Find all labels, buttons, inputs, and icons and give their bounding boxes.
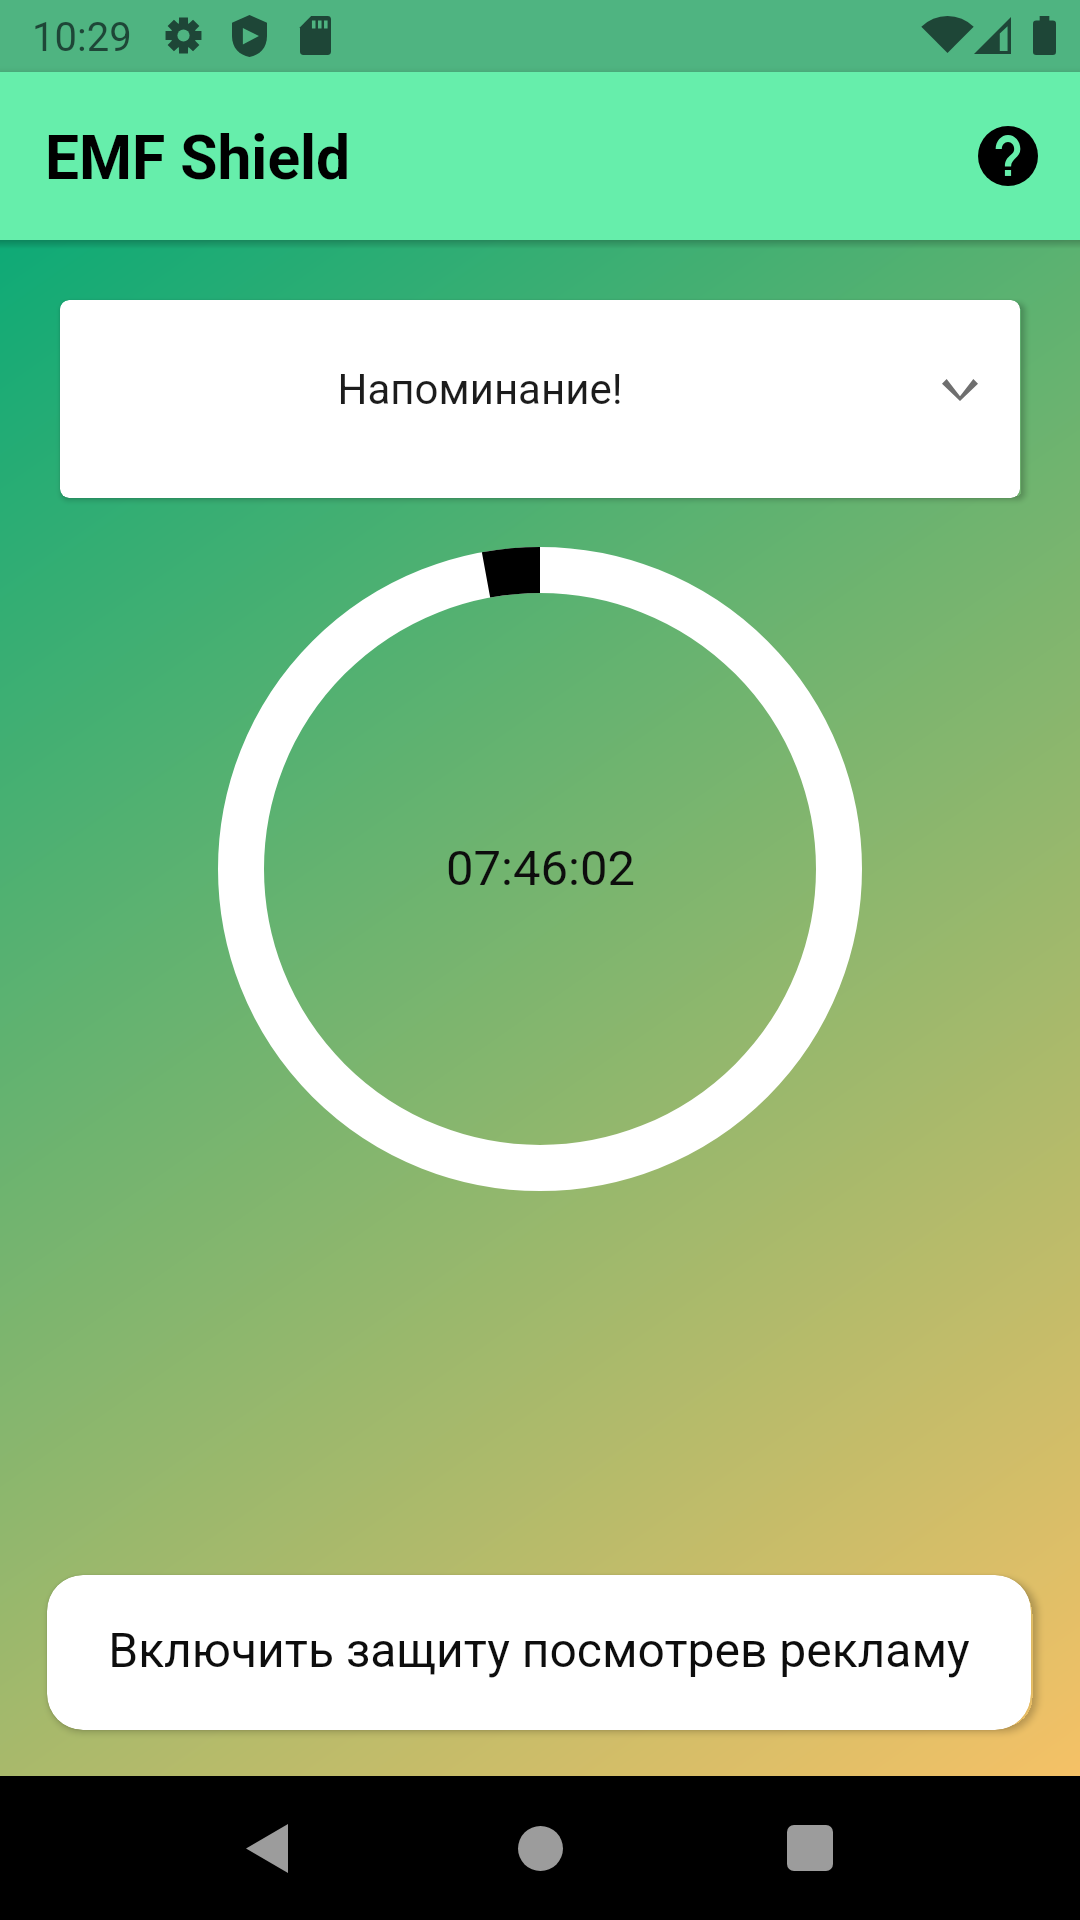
button[interactable]: Включить защиту посмотрев рекламу: [47, 1575, 1031, 1730]
staticText: EMF Shield: [45, 123, 351, 194]
button[interactable]: Help: [960, 108, 1056, 204]
staticText: 10:29: [32, 14, 132, 61]
button[interactable]: Recents: [730, 1776, 890, 1920]
button[interactable]: Back: [187, 1776, 347, 1920]
staticText: 07:46:02: [446, 840, 635, 897]
staticText: Включить защиту посмотрев рекламу: [108, 1622, 970, 1678]
staticText: Напоминание!: [60, 365, 900, 414]
button[interactable]: Home: [460, 1776, 620, 1920]
button[interactable]: Напоминание!: [60, 300, 1020, 498]
